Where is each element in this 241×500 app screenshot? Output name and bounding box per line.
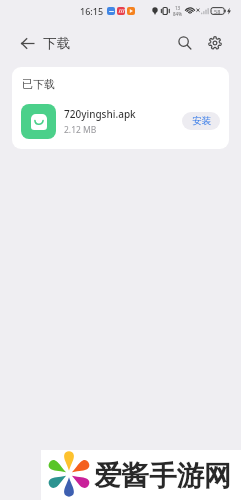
staticText: 720yingshi.apk — [64, 107, 136, 121]
staticText: 16:15 — [80, 5, 104, 17]
button[interactable]: Settings — [202, 30, 228, 56]
button[interactable]: Back — [15, 31, 39, 55]
staticText: 13 — [175, 5, 181, 11]
staticText: 已下载 — [22, 77, 55, 91]
button[interactable]: Search — [172, 30, 198, 56]
staticText: 安装 — [192, 115, 211, 127]
staticText: 爱酱手游网 — [94, 459, 232, 494]
staticText: 84% — [173, 11, 182, 17]
button[interactable]: 安装 — [182, 112, 220, 130]
staticText: 2.12 MB — [64, 124, 97, 136]
staticText: 下载 — [43, 35, 70, 52]
button[interactable]: 720yingshi.apk — [12, 97, 229, 145]
staticText: 58 — [214, 8, 221, 15]
